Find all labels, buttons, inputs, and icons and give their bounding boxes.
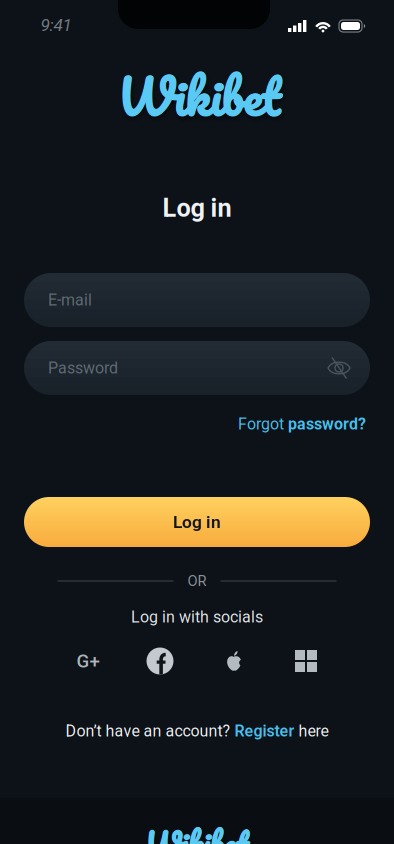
staticText: Wikibet <box>117 55 280 137</box>
staticText: Password <box>48 359 118 377</box>
staticText: Log in with socials <box>131 608 263 626</box>
staticText: Don’t have an account? <box>65 722 234 740</box>
staticText: Wikibet <box>117 54 280 136</box>
staticText: OR <box>187 573 206 589</box>
staticText: here <box>294 722 328 740</box>
staticText: Wikibet <box>145 817 248 844</box>
staticText: Register <box>234 722 294 740</box>
staticText: password? <box>288 415 366 433</box>
staticText: Log in <box>162 193 231 222</box>
staticText: Wikibet <box>118 55 281 137</box>
staticText: Log in <box>173 512 221 532</box>
staticText: Forgot <box>238 415 288 433</box>
staticText: E-mail <box>48 291 92 309</box>
staticText: Wikibet <box>145 818 248 844</box>
staticText: Wikibet <box>117 55 280 137</box>
staticText: Wikibet <box>145 817 248 844</box>
staticText: 9:41 <box>40 15 71 35</box>
staticText: Wikibet <box>145 817 248 844</box>
staticText: G+ <box>76 650 99 672</box>
staticText: Wikibet <box>117 56 280 137</box>
staticText: Wikibet <box>146 817 249 844</box>
